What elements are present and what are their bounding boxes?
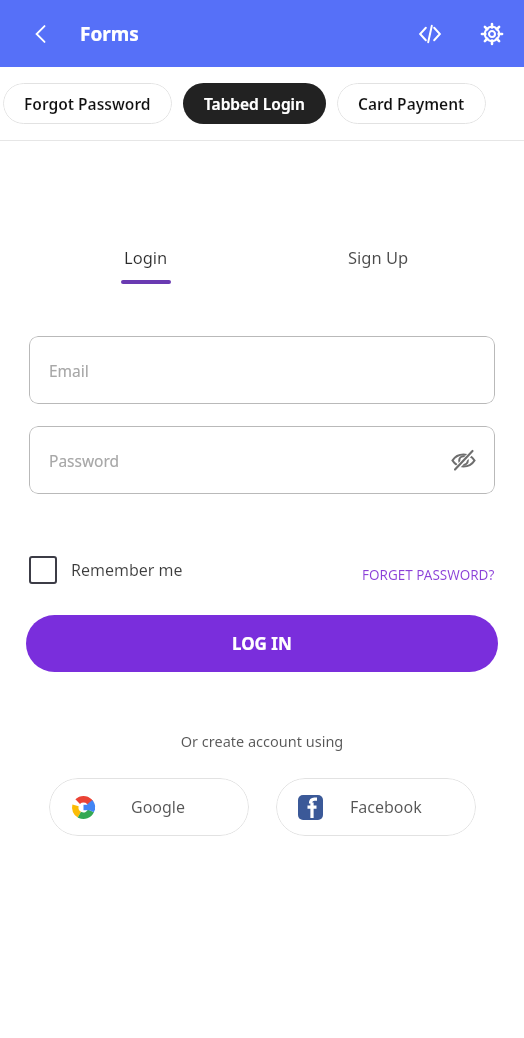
staticText: Card Payment xyxy=(358,93,465,114)
button[interactable]: Card Payment xyxy=(337,83,486,124)
button[interactable]: View code xyxy=(406,10,454,58)
button[interactable]: Settings xyxy=(468,10,516,58)
button[interactable]: Back xyxy=(18,11,64,57)
button[interactable]: Forgot Password xyxy=(3,83,172,124)
button[interactable]: Show password xyxy=(441,438,485,482)
staticText: LOG IN xyxy=(232,632,292,655)
staticText: Forgot Password xyxy=(24,93,151,114)
button[interactable]: Login xyxy=(29,246,262,284)
staticText: Remember me xyxy=(71,559,183,581)
staticText: FORGET PASSWORD? xyxy=(362,566,495,584)
staticText: Tabbed Login xyxy=(204,93,305,114)
button[interactable]: Sign Up xyxy=(262,246,495,284)
button[interactable]: Email xyxy=(29,336,495,404)
staticText: Sign Up xyxy=(348,246,409,268)
staticText: Google xyxy=(131,796,186,818)
button[interactable]: Password xyxy=(29,426,495,494)
button[interactable]: FORGET PASSWORD? xyxy=(362,566,495,584)
staticText: Password xyxy=(49,450,120,471)
staticText: Login xyxy=(124,246,168,268)
staticText: Email xyxy=(49,360,89,381)
staticText: Facebook xyxy=(350,796,422,818)
button[interactable]: Remember me xyxy=(29,556,183,584)
button[interactable]: Facebook xyxy=(276,778,476,836)
staticText: Forms xyxy=(80,21,139,47)
staticText: Or create account using xyxy=(0,731,524,751)
button[interactable]: Google xyxy=(49,778,249,836)
button[interactable]: LOG IN xyxy=(26,615,498,672)
button[interactable]: Tabbed Login xyxy=(183,83,326,124)
